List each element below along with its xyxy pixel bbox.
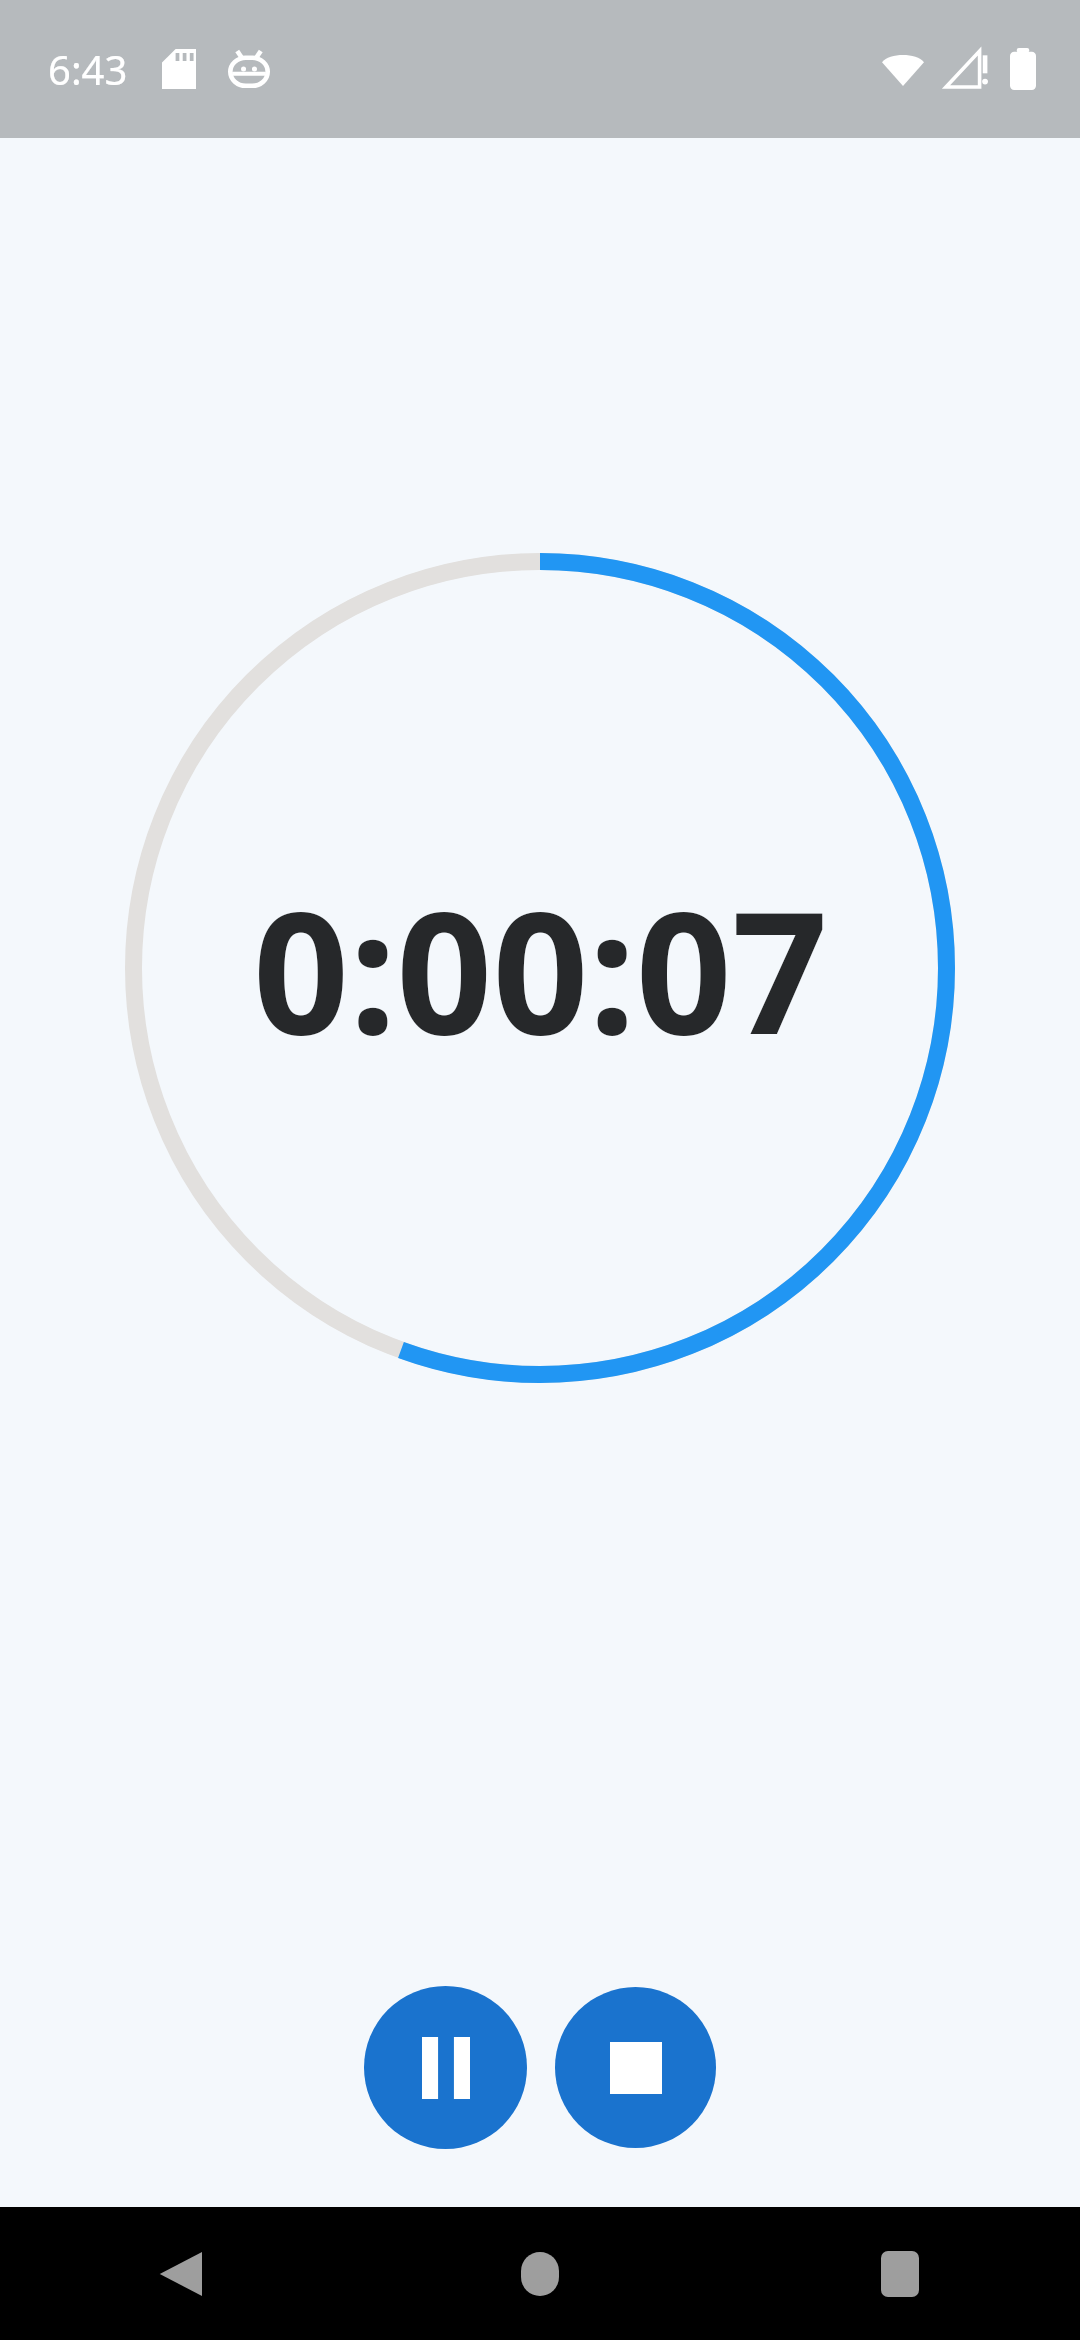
button[interactable]: Recent apps [720,2207,1080,2340]
staticText: 6:43 [48,42,128,96]
button[interactable]: Stop [555,1987,716,2148]
button[interactable]: Home [360,2207,720,2340]
button[interactable]: Back [0,2207,360,2340]
button[interactable]: Pause [364,1986,527,2149]
staticText: 0:00:07 [253,854,828,1083]
